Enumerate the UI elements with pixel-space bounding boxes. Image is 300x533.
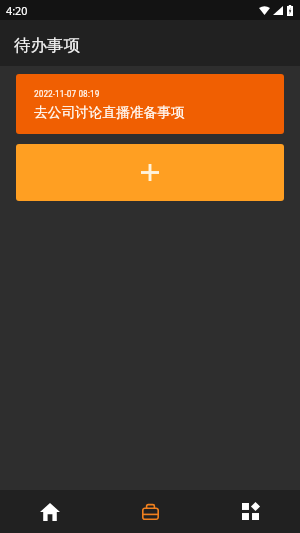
staticText: 4:20 — [6, 3, 28, 18]
button[interactable]: Home — [0, 490, 100, 533]
button[interactable]: Add — [16, 144, 284, 201]
button[interactable]: Dashboard — [200, 490, 300, 533]
staticText: 待办事项 — [14, 35, 80, 56]
staticText: 去公司讨论直播准备事项 — [34, 104, 185, 121]
button[interactable]: Work — [100, 490, 200, 533]
staticText: 2022-11-07 08:19 — [34, 88, 100, 99]
button[interactable]: 2022-11-07 08:19 — [16, 74, 284, 134]
